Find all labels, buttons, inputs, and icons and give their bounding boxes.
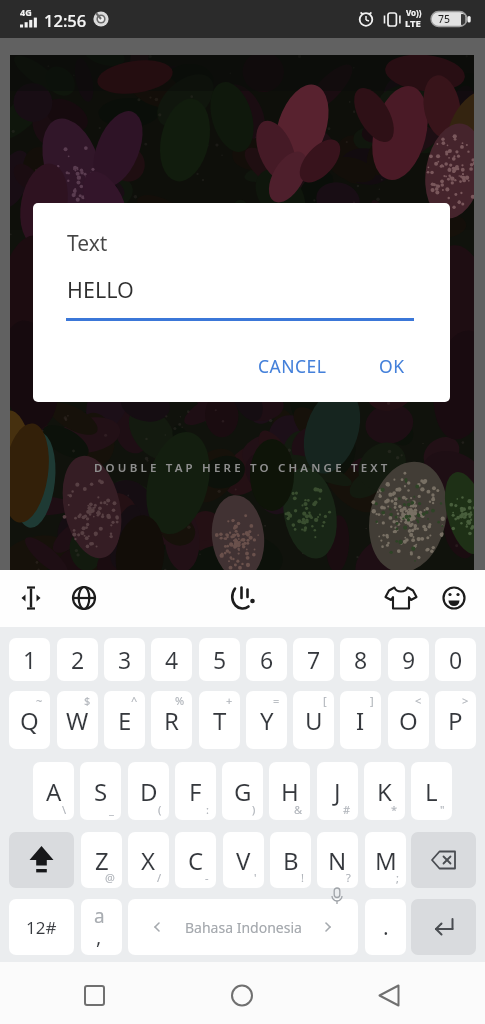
staticText: 1 xyxy=(23,644,37,675)
button[interactable]: 8 xyxy=(340,638,381,681)
staticText: ! xyxy=(301,870,304,885)
button[interactable]: T xyxy=(199,691,240,749)
button[interactable]: K xyxy=(364,762,405,820)
staticText: 2 xyxy=(71,644,85,675)
button[interactable] xyxy=(411,832,476,888)
button[interactable]: P xyxy=(435,691,476,749)
staticText: 4 xyxy=(165,644,179,675)
button[interactable]: O xyxy=(388,691,429,749)
button[interactable]: OK xyxy=(365,343,419,389)
staticText: / xyxy=(157,870,162,885)
staticText: * xyxy=(391,802,398,817)
button[interactable]: B xyxy=(270,832,311,888)
staticText: T xyxy=(213,704,227,737)
staticText: OK xyxy=(379,354,405,378)
staticText: H xyxy=(281,775,299,808)
button[interactable] xyxy=(81,899,122,955)
button[interactable]: 0 xyxy=(435,638,476,681)
button[interactable]: 12# xyxy=(9,899,74,955)
staticText: W xyxy=(66,704,89,737)
staticText: C xyxy=(188,844,204,877)
button[interactable]: G xyxy=(222,762,263,820)
staticText: : xyxy=(206,802,209,817)
staticText: $ xyxy=(84,693,91,708)
staticText: G xyxy=(234,775,252,808)
button[interactable] xyxy=(8,573,54,623)
staticText: J xyxy=(334,775,341,808)
button[interactable]: R xyxy=(151,691,192,749)
staticText: \ xyxy=(62,802,67,817)
staticText: Bahasa Indonesia xyxy=(185,918,302,937)
staticText: ] xyxy=(370,693,374,708)
button[interactable]: 6 xyxy=(246,638,287,681)
staticText: ^ xyxy=(131,693,138,708)
staticText: 5 xyxy=(213,644,227,675)
button[interactable]: L xyxy=(411,762,452,820)
button[interactable]: 9 xyxy=(388,638,429,681)
staticText: 75 xyxy=(438,12,451,26)
button[interactable] xyxy=(70,972,120,1018)
button[interactable]: S xyxy=(80,762,121,820)
staticText: 4G xyxy=(20,6,32,18)
button[interactable]: . xyxy=(365,899,406,955)
staticText: 8 xyxy=(354,644,368,675)
button[interactable] xyxy=(411,899,476,955)
button[interactable]: C xyxy=(175,832,216,888)
button[interactable]: I xyxy=(340,691,381,749)
button[interactable]: DOUBLE TAP HERE TO CHANGE TEXT xyxy=(94,460,391,476)
button[interactable]: X xyxy=(128,832,169,888)
button[interactable]: 1 xyxy=(9,638,50,681)
button[interactable] xyxy=(128,899,358,955)
staticText: U xyxy=(305,704,323,737)
button[interactable]: 3 xyxy=(104,638,145,681)
button[interactable]: CANCEL xyxy=(229,343,355,389)
button[interactable]: V xyxy=(223,832,264,888)
staticText: ; xyxy=(396,870,399,885)
staticText: L xyxy=(425,775,438,808)
button[interactable] xyxy=(431,573,477,623)
staticText: < xyxy=(415,693,422,708)
button[interactable]: E xyxy=(104,691,145,749)
staticText: R xyxy=(164,704,179,737)
staticText: > xyxy=(462,693,469,708)
button[interactable]: M xyxy=(365,832,406,888)
staticText: O xyxy=(399,704,418,737)
button[interactable] xyxy=(378,573,424,623)
button[interactable] xyxy=(217,972,267,1018)
button[interactable] xyxy=(61,573,107,623)
button[interactable]: 2 xyxy=(57,638,98,681)
staticText: % xyxy=(175,693,185,708)
button[interactable]: D xyxy=(128,762,169,820)
button[interactable] xyxy=(364,972,414,1018)
button[interactable]: J xyxy=(317,762,358,820)
button[interactable]: 4 xyxy=(151,638,192,681)
staticText: ' xyxy=(254,870,257,885)
button[interactable]: H xyxy=(269,762,310,820)
button[interactable]: Z xyxy=(81,832,122,888)
button[interactable]: W xyxy=(57,691,98,749)
button[interactable]: U xyxy=(293,691,334,749)
staticText: 7 xyxy=(307,644,321,675)
staticText: X xyxy=(141,844,156,877)
staticText: - xyxy=(205,870,209,885)
staticText: Q xyxy=(20,704,39,737)
staticText: B xyxy=(283,844,299,877)
button[interactable]: Y xyxy=(246,691,287,749)
button[interactable]: F xyxy=(175,762,216,820)
button[interactable]: 7 xyxy=(293,638,334,681)
button[interactable]: Q xyxy=(9,691,50,749)
staticText: S xyxy=(94,775,108,808)
staticText: [ xyxy=(323,693,327,708)
button[interactable] xyxy=(9,832,74,888)
staticText: _ xyxy=(109,802,114,817)
staticText: " xyxy=(440,802,445,817)
button[interactable]: 5 xyxy=(199,638,240,681)
staticText: D xyxy=(140,775,158,808)
staticText: Z xyxy=(95,844,109,877)
button[interactable]: A xyxy=(33,762,74,820)
staticText: , xyxy=(96,923,102,950)
button[interactable] xyxy=(219,573,265,623)
staticText: P xyxy=(448,704,463,737)
button[interactable]: N xyxy=(317,832,358,888)
staticText: Text xyxy=(67,229,108,258)
